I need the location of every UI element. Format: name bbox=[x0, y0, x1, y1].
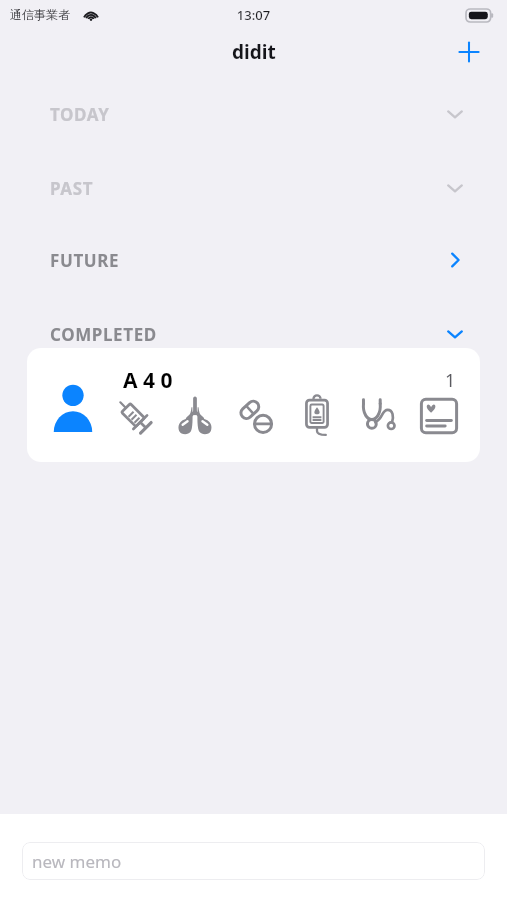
button[interactable]: A 4 0 bbox=[27, 348, 480, 462]
staticText: PAST bbox=[50, 177, 94, 200]
button[interactable]: PAST bbox=[0, 169, 507, 207]
staticText: TODAY bbox=[50, 103, 110, 126]
button[interactable]: FUTURE bbox=[0, 241, 507, 279]
staticText: 1 bbox=[445, 368, 456, 393]
button[interactable]: COMPLETED bbox=[0, 315, 507, 353]
staticText: 13:07 bbox=[0, 6, 507, 24]
button[interactable]: Add bbox=[449, 32, 489, 72]
staticText: didit bbox=[232, 39, 276, 65]
staticText: 通信事業者 bbox=[10, 7, 70, 22]
staticText: COMPLETED bbox=[50, 323, 157, 346]
button[interactable]: new memo bbox=[22, 842, 485, 880]
button[interactable]: TODAY bbox=[0, 95, 507, 133]
staticText: new memo bbox=[32, 850, 122, 873]
staticText: FUTURE bbox=[50, 249, 120, 272]
staticText: A 4 0 bbox=[123, 366, 173, 395]
